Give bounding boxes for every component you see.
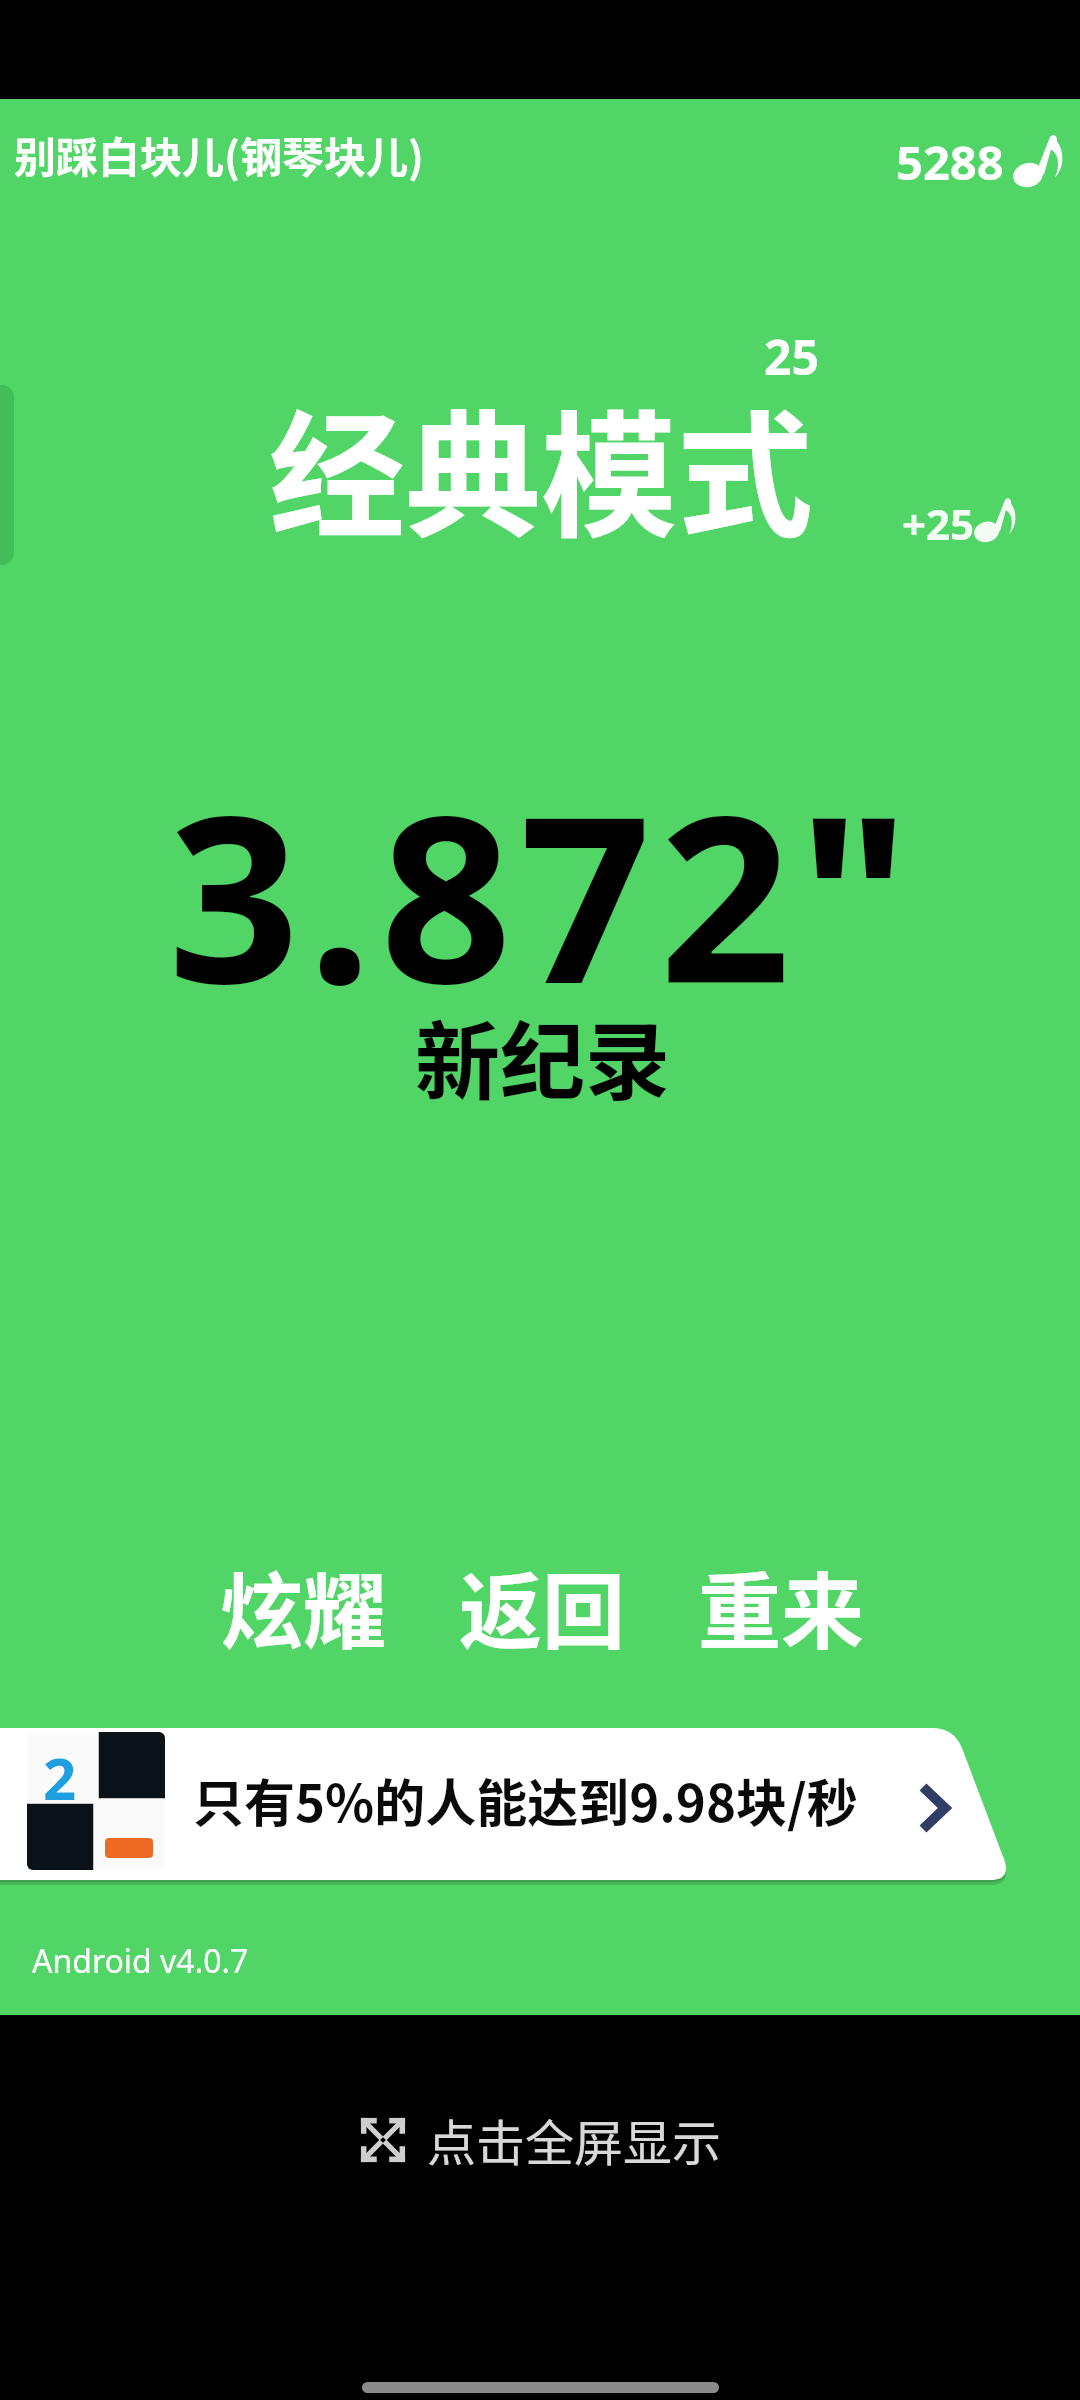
staticText: 重来 (698, 1546, 864, 1666)
staticText: 经典模式 (269, 368, 813, 565)
staticText: 点击全屏显示 (427, 2104, 722, 2175)
button[interactable]: Enter fullscreen (0, 2104, 1080, 2175)
button[interactable]: 别踩白块儿(钢琴块儿) (14, 124, 424, 185)
button[interactable]: 返回 (457, 1544, 627, 1668)
staticText: 3.872" (168, 737, 918, 1050)
staticText: 只有5%的人能达到9.98块/秒 (193, 1763, 858, 1837)
staticText: Android v4.0.7 (32, 1939, 249, 1983)
staticText: 2 (43, 1738, 77, 1817)
button[interactable]: Open side panel (0, 385, 14, 565)
staticText: 返回 (459, 1546, 625, 1666)
staticText: +25 (902, 495, 975, 552)
staticText: 别踩白块儿(钢琴块儿) (14, 124, 424, 185)
staticText: 5288 (896, 130, 1004, 194)
staticText: 25 (764, 324, 819, 389)
button[interactable]: 重来 (696, 1544, 866, 1668)
button[interactable]: 炫耀 (218, 1544, 388, 1668)
other: Open ad (918, 1782, 950, 1834)
other: Enter fullscreen (359, 2116, 407, 2164)
staticText: 新纪录 (415, 994, 671, 1117)
staticText: 炫耀 (220, 1546, 386, 1666)
button[interactable]: 2 (0, 1728, 1020, 1880)
